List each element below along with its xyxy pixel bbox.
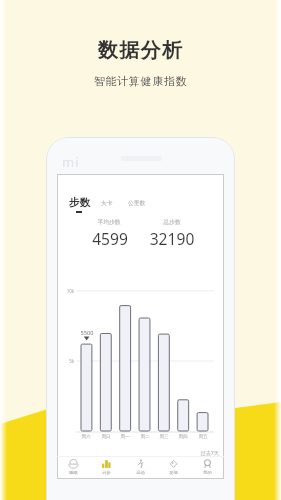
staticText: 我的 [191, 470, 224, 477]
staticText: 周一 [116, 434, 134, 441]
staticText: 5500 [79, 329, 95, 336]
staticText: 大卡 [101, 199, 113, 206]
staticText: 发现 [157, 470, 190, 477]
staticText: 数据分析 [0, 38, 281, 62]
button[interactable]: 发现 [157, 459, 190, 479]
button[interactable]: 睡眠 [57, 459, 90, 479]
staticText: mi [62, 153, 80, 171]
button[interactable]: 运动 [124, 459, 157, 479]
button[interactable]: 过去7天 [196, 449, 219, 456]
staticText: 5k [62, 358, 74, 364]
button[interactable]: 大卡 [99, 197, 114, 208]
staticText: 步数 [69, 196, 90, 209]
staticText: 智能计算健康指数 [0, 74, 281, 88]
button[interactable]: 公里数 [126, 197, 146, 208]
staticText: 周日 [97, 434, 115, 441]
staticText: 计步 [90, 470, 123, 477]
staticText: 周二 [136, 434, 154, 441]
button[interactable]: 步数 [66, 193, 95, 214]
staticText: 睡眠 [57, 470, 90, 477]
staticText: 32190 [147, 228, 197, 246]
staticText: 过去7天 [196, 449, 219, 456]
staticText: 周三 [155, 434, 173, 441]
staticText: 公里数 [128, 199, 146, 206]
staticText: 4599 [89, 228, 131, 246]
button[interactable]: 我的 [191, 459, 224, 479]
staticText: 总步数 [151, 218, 193, 226]
staticText: 周五 [194, 434, 212, 441]
staticText: 周六 [77, 434, 95, 441]
staticText: 平均步数 [88, 218, 130, 226]
staticText: 周四 [174, 434, 192, 441]
staticText: 运动 [124, 470, 157, 477]
button[interactable]: 计步 [90, 459, 123, 479]
staticText: 10k [62, 288, 74, 294]
